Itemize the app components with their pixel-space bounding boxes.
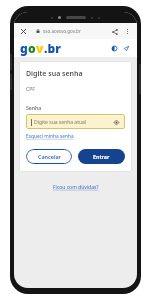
button[interactable]: Show password: [112, 118, 120, 126]
button[interactable]: Contrast: [110, 44, 119, 53]
staticText: Entrar: [93, 153, 110, 160]
button[interactable]: g: [20, 40, 61, 56]
button[interactable]: Close tab: [19, 27, 28, 36]
staticText: Cancelar: [38, 153, 61, 160]
staticText: Senha: [26, 104, 42, 111]
button[interactable]: Cancelar: [26, 149, 72, 164]
staticText: v: [36, 40, 44, 56]
button[interactable]: Ficou com dúvidas?: [51, 182, 101, 193]
staticText: CPF: [26, 86, 35, 93]
button[interactable]: Accessibility: [122, 44, 131, 53]
button[interactable]: More options: [122, 26, 132, 36]
staticText: o: [28, 40, 36, 56]
button[interactable]: Share: [109, 26, 120, 37]
staticText: .br: [44, 40, 61, 56]
staticText: sso.acesso.gov.br: [43, 28, 81, 34]
staticText: g: [20, 40, 28, 56]
staticText: Digite sua senha: [26, 69, 83, 79]
button[interactable]: Esqueci minha senha: [26, 133, 74, 140]
button[interactable]: Entrar: [78, 149, 125, 164]
staticText: Digite sua senha atual: [34, 119, 87, 126]
button[interactable]: Digite sua senha atual: [26, 114, 125, 129]
